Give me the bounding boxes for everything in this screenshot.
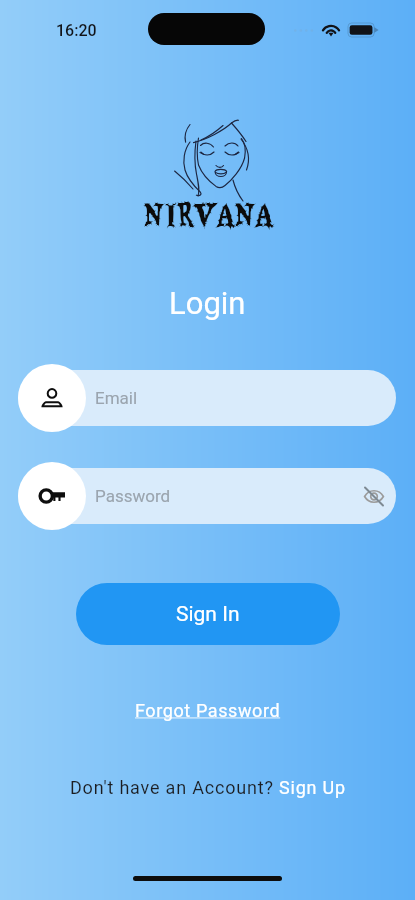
staticText: Login (169, 285, 246, 321)
staticText: Don't have an Account? (70, 777, 279, 798)
button[interactable]: Sign In (76, 583, 340, 645)
staticText: Email (95, 388, 138, 408)
staticText: Password (95, 486, 171, 506)
staticText: NIRVANA (143, 186, 273, 242)
button[interactable]: Show password (354, 476, 394, 516)
button[interactable]: Sign Up (279, 777, 346, 798)
button[interactable]: Password (0, 462, 415, 530)
staticText: 16:20 (56, 21, 97, 40)
button[interactable]: Forgot Password (135, 700, 281, 721)
button[interactable]: Email (0, 364, 415, 432)
staticText: Sign In (176, 602, 240, 627)
